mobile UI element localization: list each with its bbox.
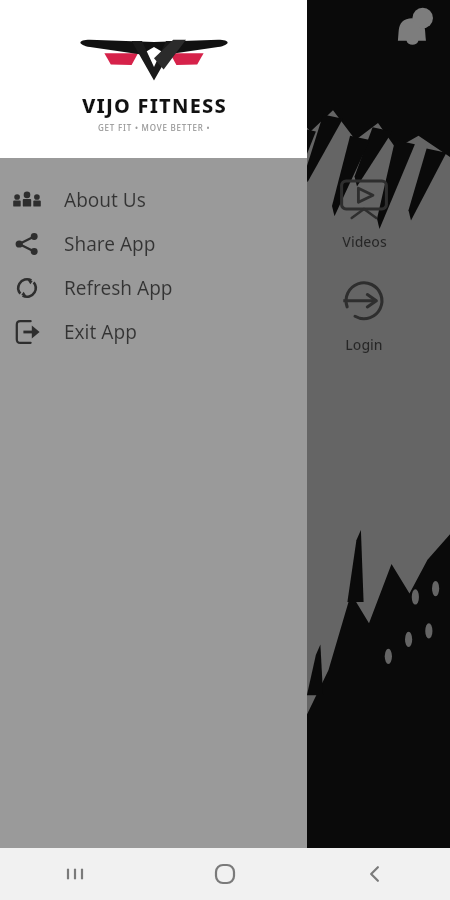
button[interactable]: Back	[300, 848, 450, 900]
button[interactable]: Exit App	[0, 310, 307, 354]
staticText: VIJO FITNESS	[82, 92, 227, 119]
button[interactable]: Login	[321, 273, 407, 356]
staticText: Exit App	[64, 319, 137, 345]
button[interactable]: Recents	[0, 848, 150, 900]
staticText: GET FIT • MOVE BETTER •	[98, 122, 211, 133]
button[interactable]: Notifications	[386, 4, 440, 58]
button[interactable]: Videos	[321, 170, 407, 253]
staticText: Share App	[64, 231, 156, 257]
button[interactable]: Refresh App	[0, 266, 307, 310]
button[interactable]: Share App	[0, 222, 307, 266]
staticText: About Us	[64, 187, 146, 213]
button[interactable]: About Us	[0, 178, 307, 222]
staticText: Refresh App	[64, 275, 173, 301]
button[interactable]: Home	[150, 848, 300, 900]
staticText: Login	[345, 335, 383, 354]
staticText: Videos	[342, 232, 387, 251]
